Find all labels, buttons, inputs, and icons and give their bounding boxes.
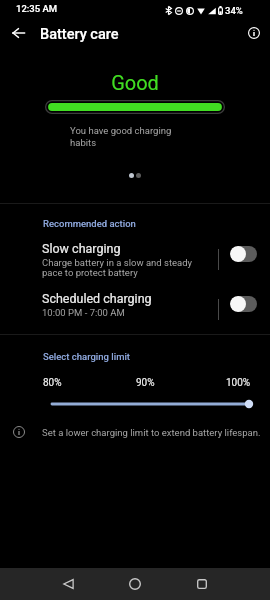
staticText: You have good charging habits	[70, 125, 172, 148]
staticText: Recommended action	[43, 218, 136, 229]
button[interactable]: Home	[119, 568, 151, 600]
button[interactable]: Scheduled charging	[0, 290, 270, 326]
staticText: Good	[0, 71, 270, 94]
button[interactable]: Back	[3, 18, 33, 48]
staticText: Charge battery in a slow and steady pace…	[42, 257, 193, 279]
button[interactable]: Recent apps	[186, 568, 218, 600]
staticText: Slow charging	[42, 241, 121, 256]
staticText: Scheduled charging	[42, 291, 152, 306]
button[interactable]: Charging limit slider	[0, 396, 270, 412]
button[interactable]: Back	[52, 568, 84, 600]
staticText: 10:00 PM - 7:00 AM	[42, 307, 125, 318]
staticText: Set a lower charging limit to extend bat…	[42, 427, 261, 438]
staticText: Select charging limit	[43, 351, 131, 362]
button[interactable]: Slow charging	[0, 240, 270, 284]
button[interactable]: Slow charging switch	[230, 246, 257, 262]
staticText: 34%	[225, 5, 243, 16]
staticText: 12:35 AM	[16, 3, 58, 14]
staticText: 100%	[226, 377, 251, 389]
staticText: 90%	[136, 377, 155, 389]
button[interactable]: Information	[239, 18, 269, 48]
staticText: 80%	[43, 377, 62, 389]
button[interactable]: Scheduled charging switch	[230, 296, 257, 312]
staticText: Battery care	[40, 26, 119, 43]
